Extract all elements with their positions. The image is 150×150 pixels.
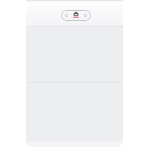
button[interactable]: Previous [64, 13, 69, 18]
button[interactable]: Next [83, 13, 88, 18]
button[interactable]: Home [72, 10, 80, 21]
